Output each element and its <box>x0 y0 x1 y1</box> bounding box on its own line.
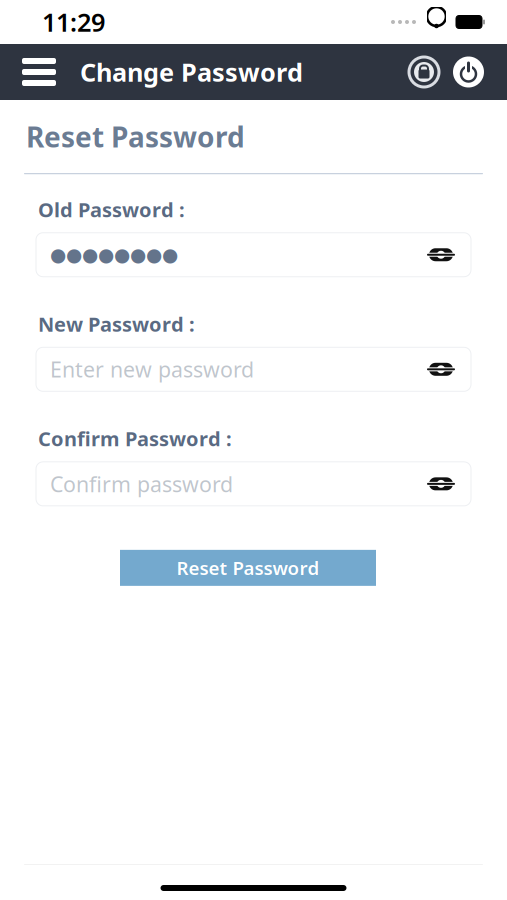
button[interactable]: Change Password <box>68 47 303 97</box>
staticText: New Password : <box>38 311 195 337</box>
staticText: Confirm Password : <box>38 425 232 452</box>
staticText: Change Password <box>80 55 303 89</box>
staticText: Reset Password <box>26 118 245 155</box>
button[interactable]: Menu <box>10 48 68 96</box>
button[interactable]: Security <box>402 50 446 94</box>
button[interactable]: ●●●●●●●● <box>0 233 507 277</box>
staticText: Enter new password <box>50 355 254 383</box>
staticText: 11:29 <box>42 5 105 39</box>
button[interactable]: Log out <box>446 49 491 94</box>
staticText: Reset Password <box>176 555 319 580</box>
button[interactable]: Confirm password <box>0 462 507 506</box>
button[interactable]: Reset Password <box>120 550 376 586</box>
button[interactable]: Enter new password <box>0 347 507 391</box>
staticText: Confirm password <box>50 470 233 498</box>
staticText: ●●●●●●●● <box>50 244 178 265</box>
staticText: Old Password : <box>38 196 185 223</box>
